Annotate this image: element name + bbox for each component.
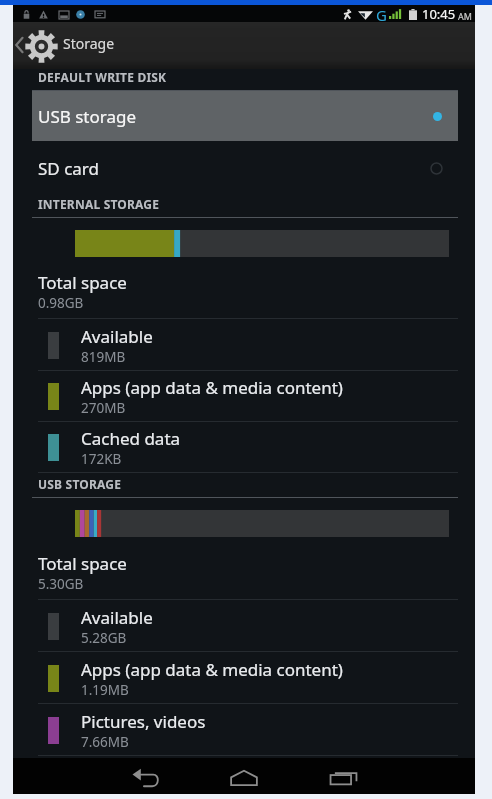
staticText: 0.98GB [38,294,84,312]
button[interactable]: USB storage [32,91,458,141]
staticText: Total space [38,552,127,575]
staticText: 7.66MB [81,733,129,751]
staticText: 172KB [81,450,122,468]
button[interactable]: Available [13,600,475,652]
staticText: USB STORAGE [38,476,122,492]
staticText: Pictures, videos [81,710,206,733]
button[interactable]: Cached data [13,421,475,473]
button[interactable]: Pictures, videos [13,704,475,756]
staticText: Apps (app data & media content) [81,658,343,681]
staticText: Available [81,325,153,348]
staticText: USB storage [38,105,137,128]
staticText: Available [81,606,153,629]
staticText: 1.19MB [81,681,129,699]
staticText: 819MB [81,348,126,366]
staticText: 5.28GB [81,629,127,647]
button[interactable]: Apps (app data & media content) [13,370,475,422]
staticText: 5.30GB [38,575,84,593]
staticText: Storage [63,34,115,53]
staticText: INTERNAL STORAGE [38,196,160,212]
button[interactable]: Navigate up [13,22,475,69]
button[interactable]: Available [13,319,475,371]
staticText: AM [458,10,472,22]
button[interactable]: Home [194,760,294,796]
staticText: G [376,5,387,23]
staticText: 10:45 [422,5,456,23]
staticText: DEFAULT WRITE DISK [38,69,167,85]
staticText: Total space [38,271,127,294]
button[interactable]: Apps (app data & media content) [13,652,475,704]
staticText: Apps (app data & media content) [81,376,343,399]
staticText: 270MB [81,399,126,417]
staticText: SD card [38,157,99,180]
staticText: Cached data [81,427,181,450]
button[interactable]: Back [96,761,196,797]
button[interactable]: SD card [32,143,457,193]
button[interactable]: Recent apps [293,759,393,795]
